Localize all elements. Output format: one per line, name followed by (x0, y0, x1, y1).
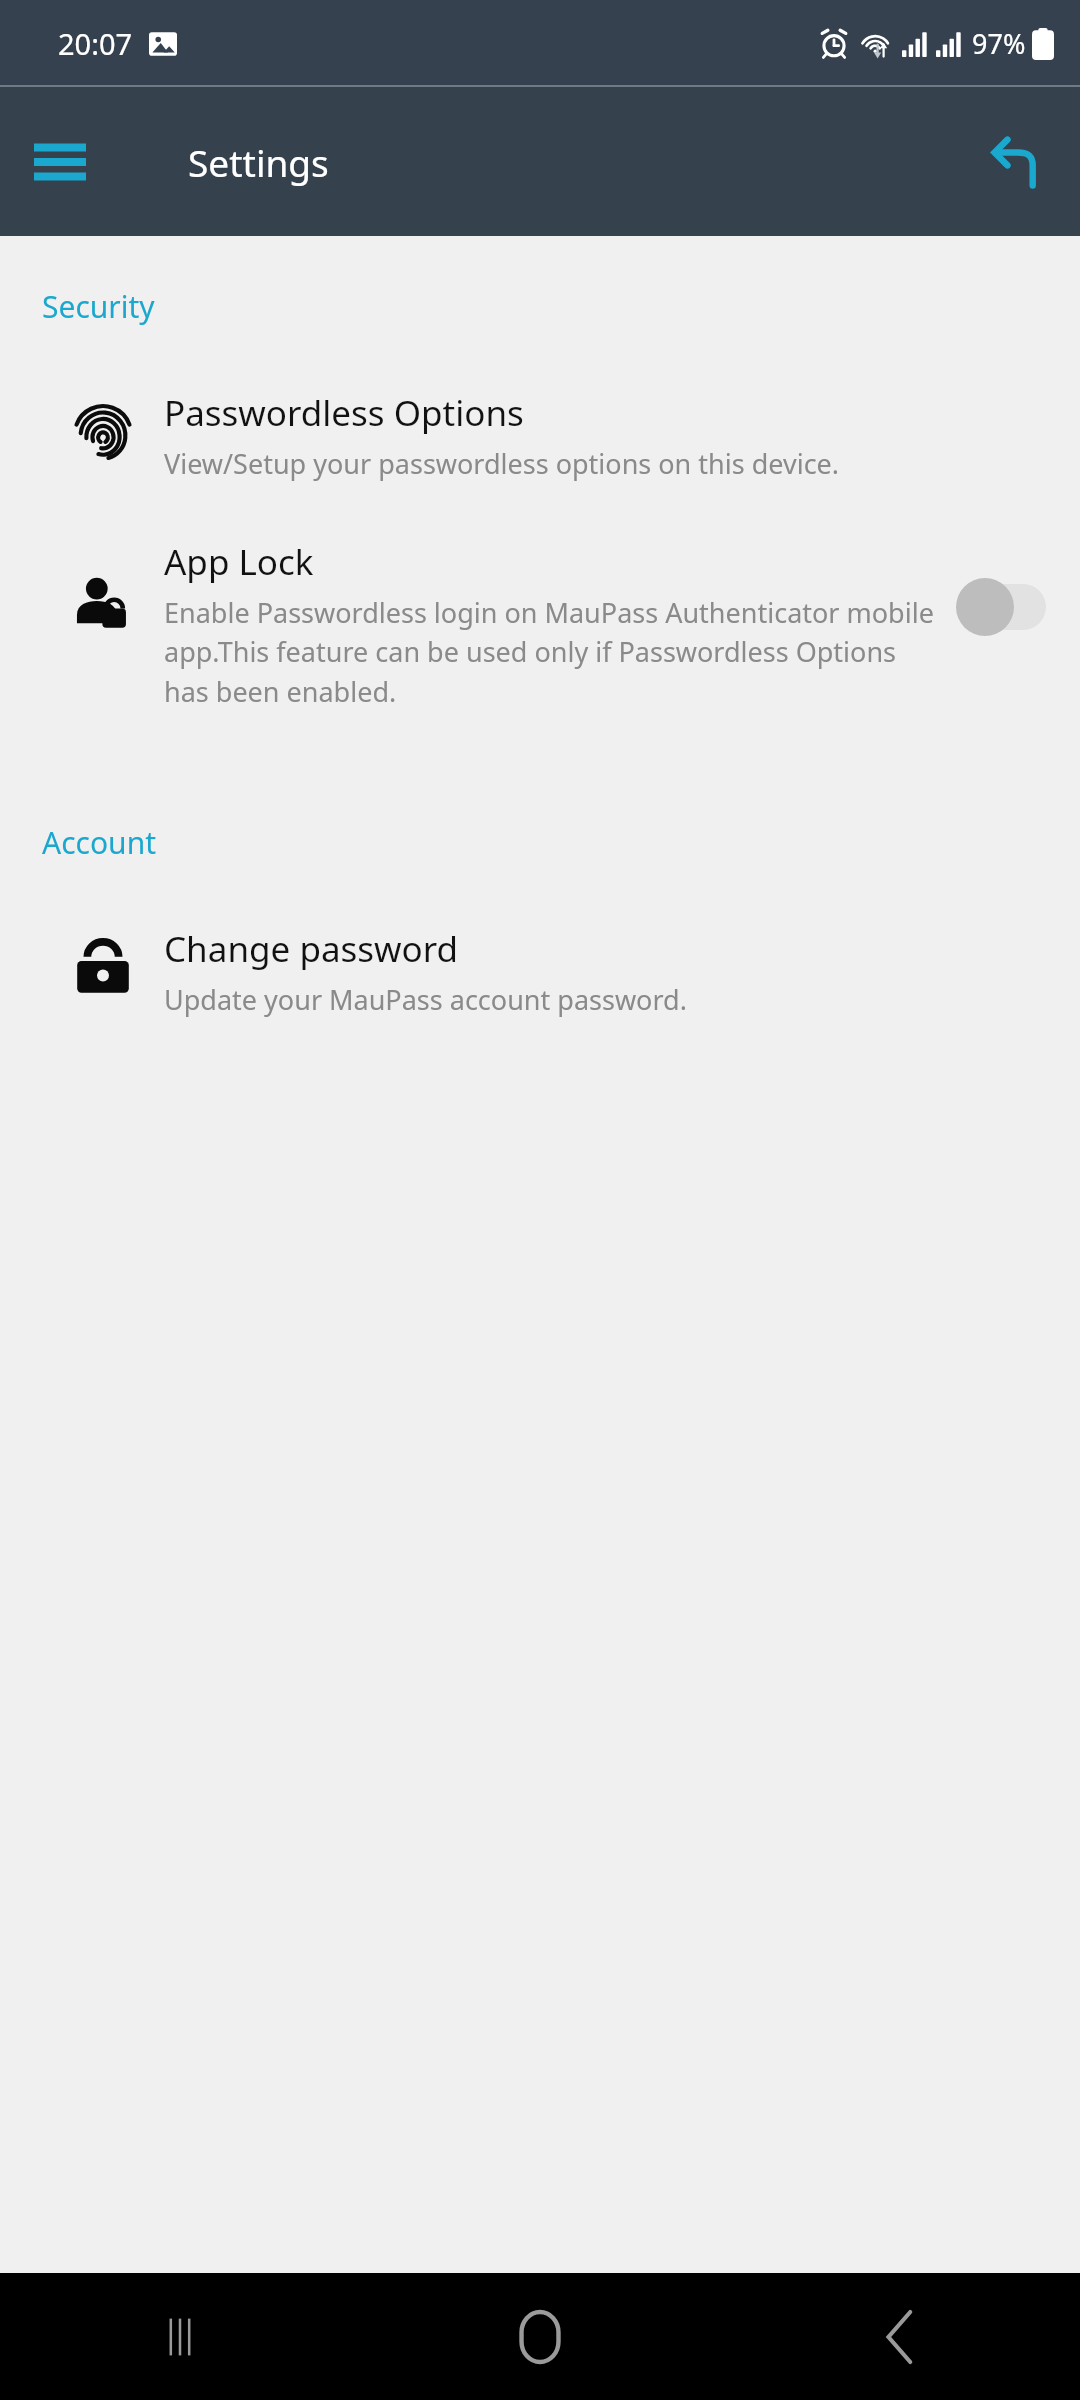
button[interactable]: Home (360, 2273, 720, 2400)
staticText: Security (42, 286, 155, 327)
button[interactable]: Back (720, 2273, 1080, 2400)
staticText: Passwordless Options (164, 389, 524, 437)
button[interactable]: Back (976, 121, 1058, 203)
button[interactable]: App Lock (0, 538, 1080, 710)
staticText: Settings (188, 137, 329, 187)
button[interactable]: App Lock toggle (956, 574, 1052, 640)
staticText: Enable Passwordless login on MauPass Aut… (164, 594, 938, 710)
staticText: Change password (164, 925, 459, 973)
button[interactable]: Recent apps (0, 2273, 360, 2400)
staticText: Account (42, 822, 157, 863)
button[interactable]: Change password (0, 925, 1080, 1018)
button[interactable]: Passwordless Options (0, 389, 1080, 482)
staticText: App Lock (164, 538, 314, 586)
staticText: 97% (972, 25, 1026, 62)
staticText: View/Setup your passwordless options on … (164, 445, 840, 482)
staticText: Update your MauPass account password. (164, 981, 687, 1018)
button[interactable]: Open navigation menu (24, 126, 96, 198)
staticText: 20:07 (58, 24, 133, 63)
